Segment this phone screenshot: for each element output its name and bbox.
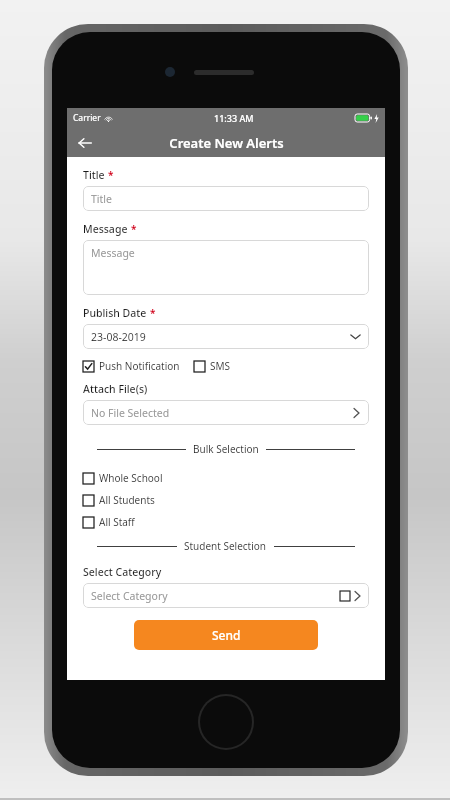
button[interactable]: No File Selected: [83, 400, 369, 425]
button[interactable]: Select Category: [83, 583, 369, 608]
staticText: No File Selected: [91, 406, 170, 420]
staticText: *: [150, 306, 156, 320]
button[interactable]: Back: [72, 130, 98, 156]
staticText: SMS: [210, 359, 231, 373]
staticText: Message: [83, 222, 128, 236]
button[interactable]: Whole School: [83, 469, 163, 487]
staticText: Send: [212, 627, 241, 643]
staticText: All Staff: [99, 515, 135, 529]
staticText: Message: [91, 246, 135, 260]
button[interactable]: All Staff: [83, 513, 135, 531]
staticText: Publish Date: [83, 306, 147, 320]
staticText: Whole School: [99, 471, 163, 485]
staticText: Select Category: [83, 565, 162, 579]
staticText: Select Category: [91, 589, 168, 603]
staticText: Push Notification: [99, 359, 180, 373]
staticText: Carrier: [73, 112, 101, 124]
staticText: *: [108, 168, 114, 182]
staticText: *: [131, 222, 137, 236]
button[interactable]: Title: [83, 186, 369, 211]
button[interactable]: Push Notification: [83, 357, 180, 375]
button[interactable]: 23-08-2019: [83, 324, 369, 349]
staticText: Bulk Selection: [193, 442, 259, 456]
staticText: Attach File(s): [83, 382, 148, 396]
staticText: Create New Alerts: [169, 134, 284, 152]
staticText: Title: [83, 168, 105, 182]
button[interactable]: All Students: [83, 491, 155, 509]
staticText: 11:33 AM: [214, 112, 254, 124]
staticText: 23-08-2019: [91, 330, 146, 344]
staticText: All Students: [99, 493, 155, 507]
button[interactable]: Message: [83, 240, 369, 295]
button[interactable]: Send: [134, 620, 318, 650]
staticText: Student Selection: [184, 539, 267, 553]
staticText: Title: [91, 192, 112, 206]
button[interactable]: SMS: [194, 357, 231, 375]
